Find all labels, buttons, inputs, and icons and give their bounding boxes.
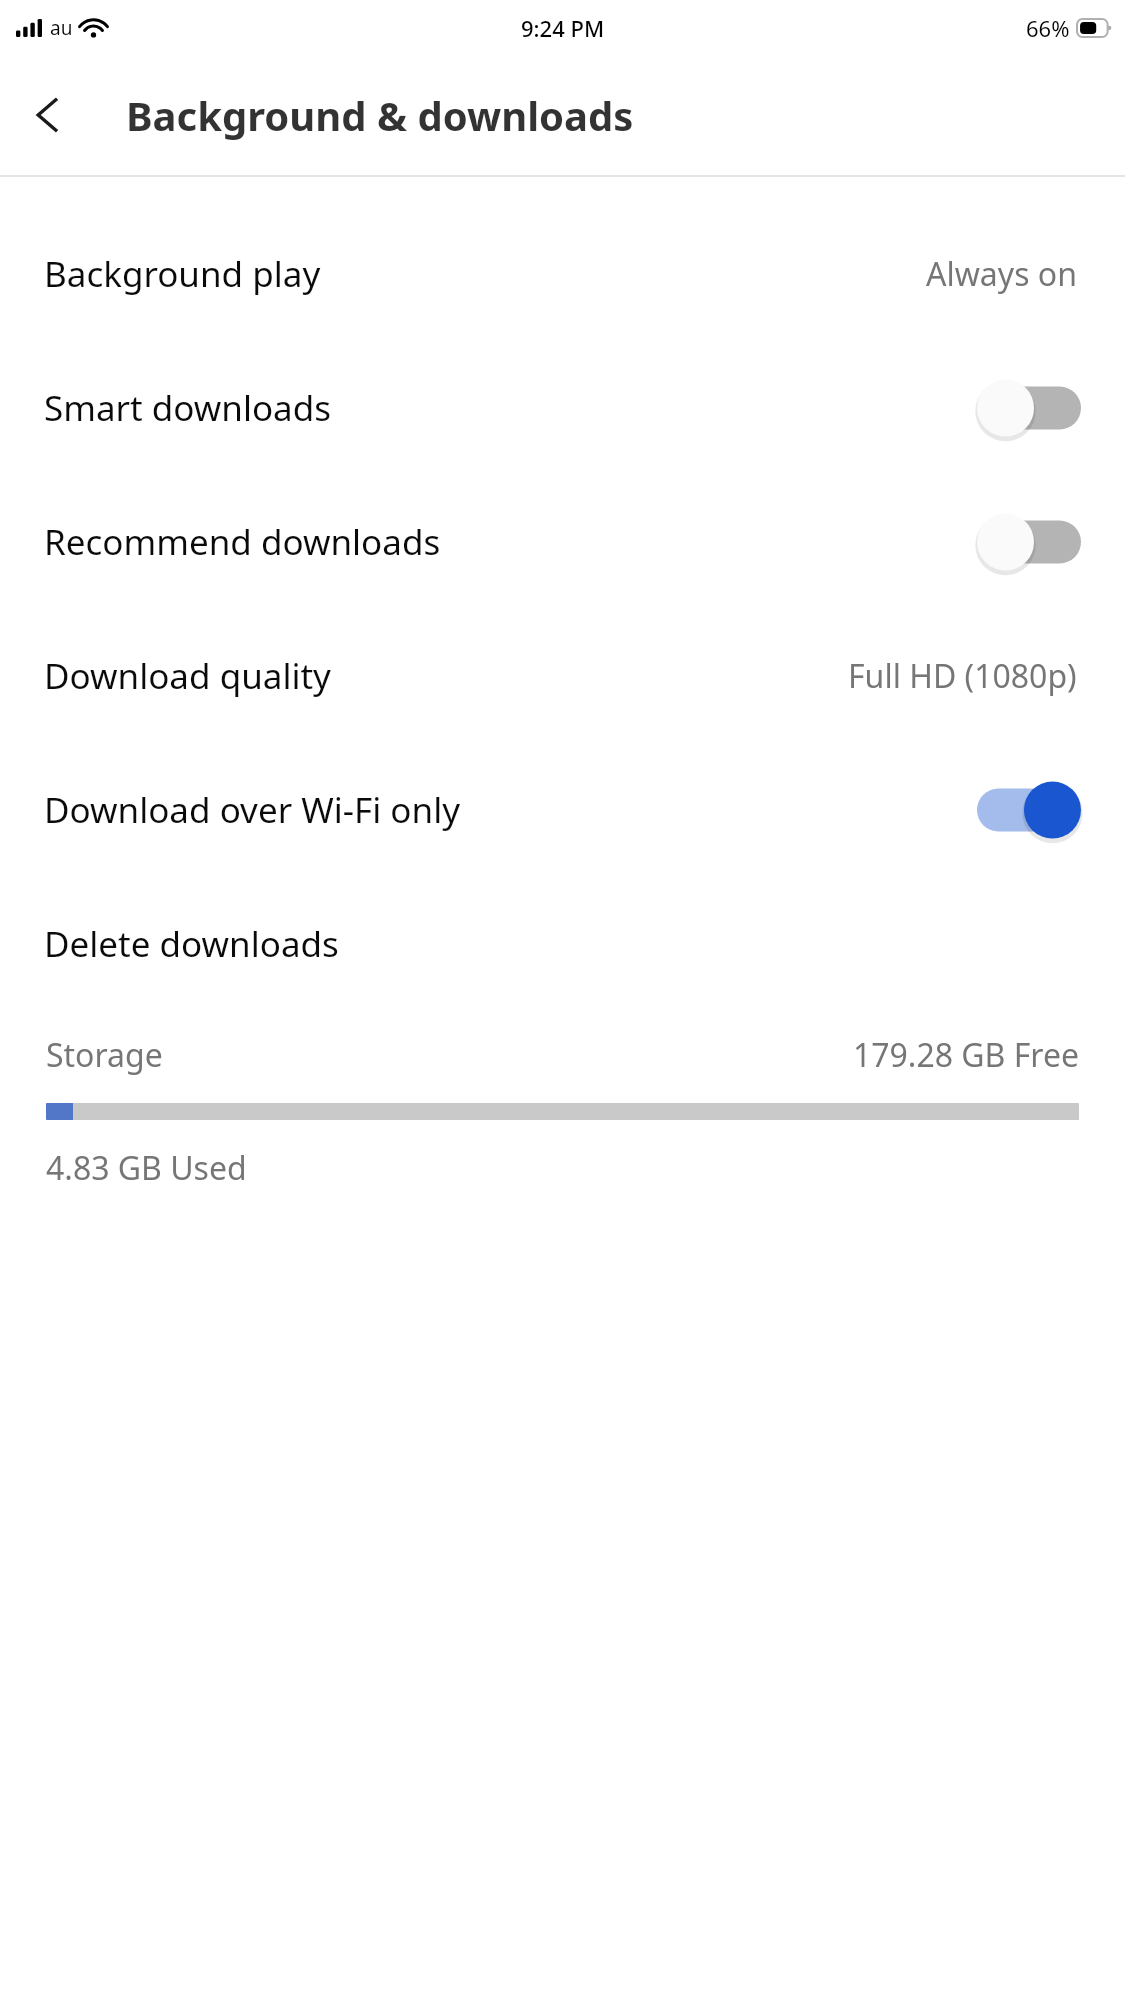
staticText: Background & downloads <box>126 88 634 142</box>
button[interactable]: Background play <box>0 207 1125 341</box>
staticText: au <box>50 15 73 41</box>
button[interactable]: Recommend downloads <box>0 475 1125 609</box>
staticText: Smart downloads <box>44 384 332 432</box>
staticText: Storage <box>46 1033 163 1077</box>
button[interactable]: Back <box>12 80 82 150</box>
button[interactable]: Delete downloads <box>0 877 1125 1011</box>
staticText: Background play <box>44 250 321 298</box>
staticText: 66% <box>1026 13 1070 43</box>
staticText: Download over Wi-Fi only <box>44 786 461 834</box>
staticText: Download quality <box>44 652 331 700</box>
staticText: 179.28 GB Free <box>852 1033 1079 1077</box>
staticText: 9:24 PM <box>521 13 605 43</box>
staticText: Full HD (1080p) <box>848 654 1077 698</box>
staticText: Recommend downloads <box>44 518 441 566</box>
button[interactable]: Download over Wi-Fi only <box>0 743 1125 877</box>
staticText: 4.83 GB Used <box>46 1146 247 1190</box>
button[interactable]: Smart downloads <box>0 341 1125 475</box>
staticText: Delete downloads <box>44 920 339 968</box>
button[interactable]: Download quality <box>0 609 1125 743</box>
staticText: Always on <box>926 252 1077 296</box>
